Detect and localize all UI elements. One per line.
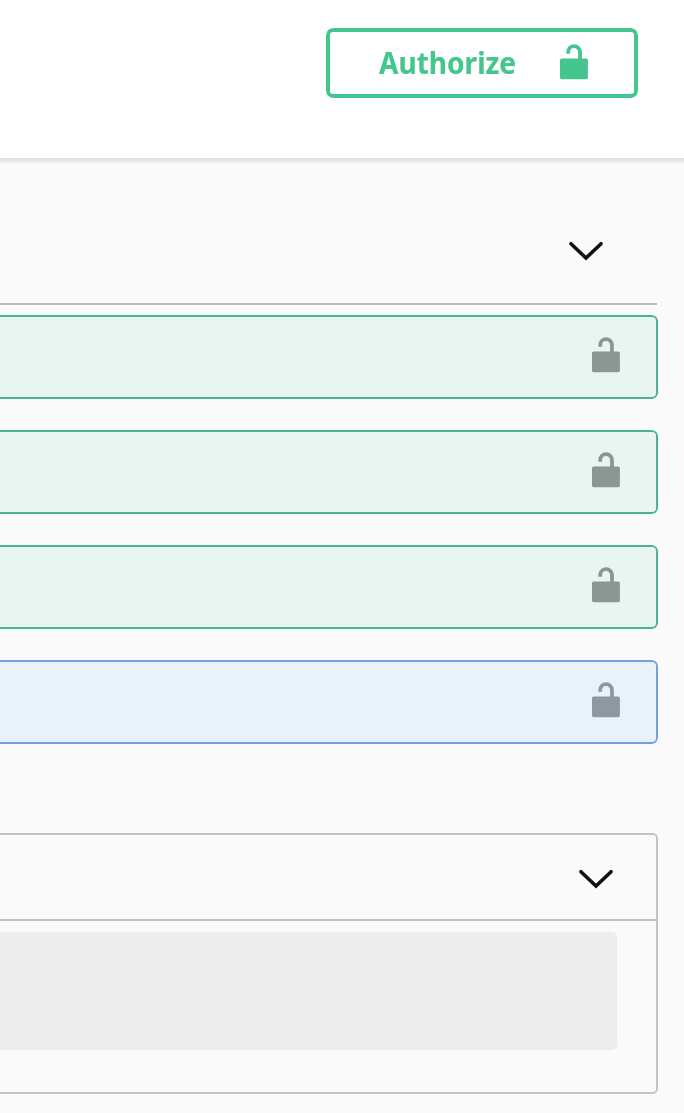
button[interactable] [0,315,658,399]
button[interactable] [0,545,658,629]
staticText: Authorize [379,41,517,83]
button[interactable]: Collapse operations [556,221,616,281]
button[interactable] [0,430,658,514]
button[interactable] [0,660,658,744]
button[interactable]: Authorize [326,28,638,98]
button[interactable]: Collapse schemas [566,849,626,909]
